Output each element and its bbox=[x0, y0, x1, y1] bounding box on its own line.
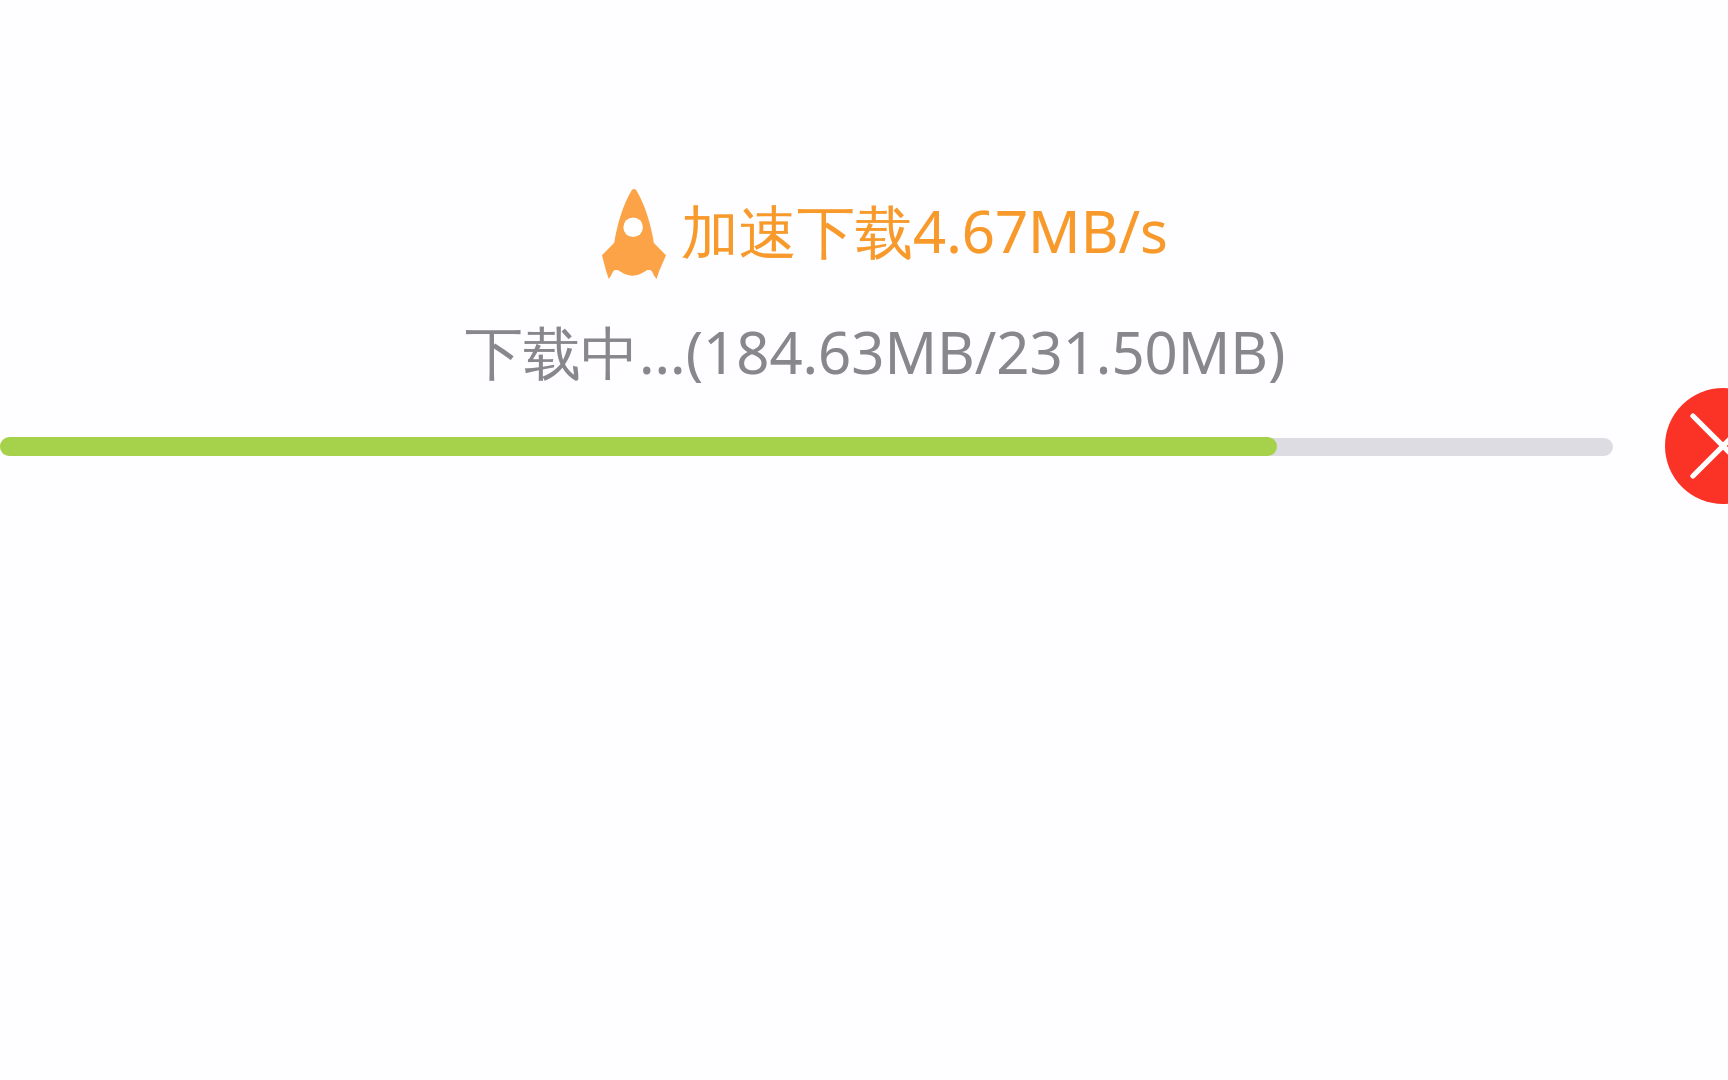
button[interactable]: Cancel download bbox=[1665, 388, 1728, 504]
other: Download boost bbox=[601, 189, 667, 279]
staticText: 加速下载4.67MB/s bbox=[681, 191, 1168, 270]
staticText: 下载中...(184.63MB/231.50MB) bbox=[465, 312, 1286, 391]
button[interactable]: Download boost bbox=[601, 189, 1168, 279]
